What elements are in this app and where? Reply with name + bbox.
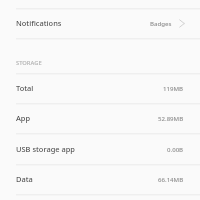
staticText: Data — [16, 174, 33, 184]
staticText: Notifications — [16, 18, 62, 28]
button[interactable]: USB storage app — [0, 133, 200, 164]
other: Open badges settings — [179, 19, 185, 28]
staticText: STORAGE — [16, 59, 42, 67]
staticText: USB storage app — [16, 144, 75, 154]
staticText: 66.14MB — [158, 175, 184, 183]
button[interactable]: Data — [0, 164, 200, 194]
staticText: App — [16, 113, 31, 123]
button[interactable]: App — [0, 103, 200, 133]
staticText: 119MB — [163, 84, 184, 92]
staticText: 0.00B — [167, 145, 184, 153]
button[interactable]: Total — [0, 73, 200, 103]
staticText: Badges — [150, 19, 172, 27]
staticText: Total — [16, 83, 34, 93]
button[interactable]: Notifications — [0, 8, 200, 38]
staticText: 52.89MB — [158, 114, 184, 122]
